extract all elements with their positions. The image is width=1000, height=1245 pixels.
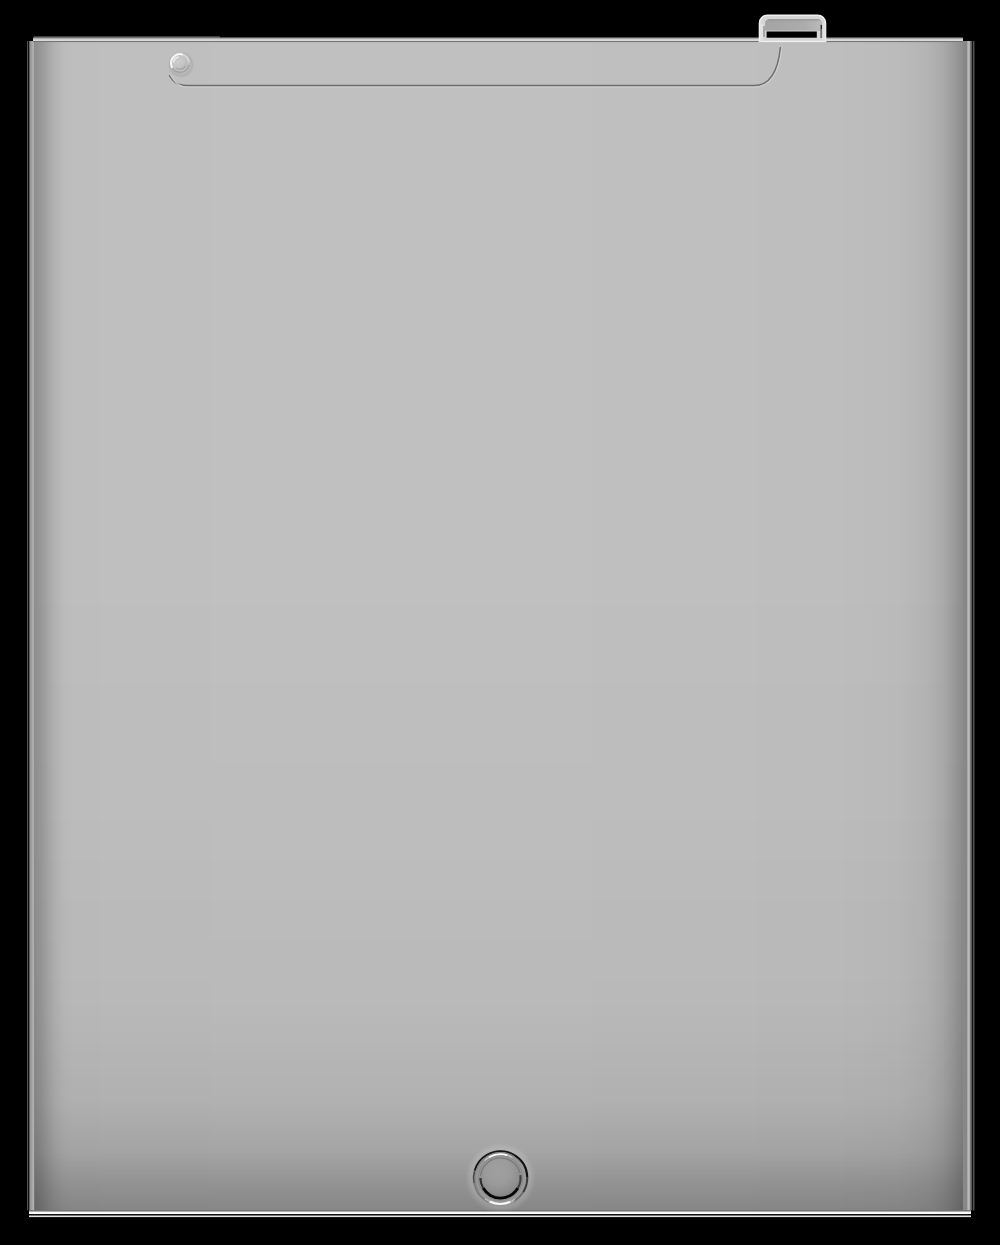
button[interactable]: Home [472,1150,529,1207]
button[interactable]: Connector [757,13,827,43]
button[interactable]: Camera [169,52,191,74]
